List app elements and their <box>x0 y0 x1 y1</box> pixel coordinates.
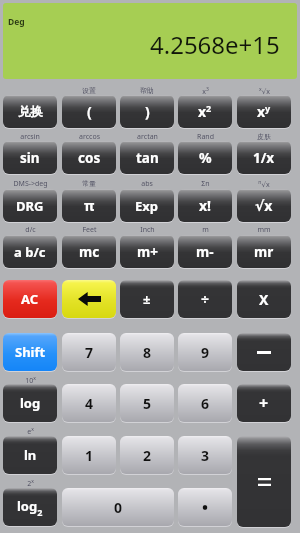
staticText: 10x <box>25 375 36 385</box>
staticText: 0 <box>114 498 123 517</box>
staticText: abs <box>141 179 153 189</box>
staticText: DMS->deg <box>13 179 48 189</box>
button[interactable]: 4 <box>62 384 116 422</box>
button[interactable]: mr <box>237 235 291 268</box>
button[interactable]: 0 <box>62 488 174 526</box>
button[interactable]: xy <box>237 95 291 128</box>
button[interactable]: 1 <box>62 436 116 474</box>
staticText: x! <box>199 196 212 215</box>
staticText: Σn <box>201 179 210 189</box>
button[interactable]: ÷ <box>178 280 232 318</box>
staticText: mm <box>257 225 271 235</box>
button[interactable]: x! <box>178 189 232 222</box>
staticText: ( <box>87 102 92 121</box>
staticText: 5 <box>143 394 152 413</box>
staticText: ex <box>27 426 34 436</box>
button[interactable]: π <box>62 189 116 222</box>
staticText: 1 <box>85 446 94 465</box>
button[interactable]: 1/x <box>237 141 291 174</box>
button[interactable]: 6 <box>178 384 232 422</box>
button[interactable]: ( <box>62 95 116 128</box>
staticText: DRG <box>16 197 44 215</box>
staticText: 帮助 <box>140 86 154 95</box>
staticText: Deg <box>8 16 25 28</box>
button[interactable]: √x <box>237 189 291 222</box>
button[interactable]: sin <box>3 141 57 174</box>
staticText: arctan <box>137 132 158 142</box>
staticText: m+ <box>137 243 158 261</box>
button[interactable]: log <box>3 384 57 422</box>
staticText: ) <box>145 102 150 121</box>
button[interactable]: cos <box>62 141 116 174</box>
staticText: x2 <box>198 102 212 121</box>
staticText: 9 <box>201 343 210 362</box>
staticText: sin <box>20 149 40 167</box>
button[interactable]: tan <box>120 141 174 174</box>
staticText: ÷ <box>201 290 210 309</box>
button[interactable]: DRG <box>3 189 57 222</box>
staticText: cos <box>78 149 101 167</box>
staticText: 6 <box>201 394 210 413</box>
staticText: m <box>202 225 209 235</box>
staticText: % <box>199 148 212 167</box>
button[interactable]: 9 <box>178 333 232 371</box>
staticText: 4 <box>85 394 94 413</box>
staticText: log <box>20 394 41 412</box>
button[interactable] <box>237 436 291 527</box>
staticText: Shift <box>15 343 46 361</box>
staticText: AC <box>21 290 39 308</box>
button[interactable]: mc <box>62 235 116 268</box>
button[interactable]: m+ <box>120 235 174 268</box>
staticText: arcsin <box>20 132 40 142</box>
staticText: Inch <box>140 225 155 235</box>
button[interactable]: Exp <box>120 189 174 222</box>
button[interactable]: x2 <box>178 95 232 128</box>
staticText: Feet <box>82 225 97 235</box>
staticText: x3 <box>202 86 209 96</box>
staticText: xy <box>257 102 271 121</box>
staticText: √x <box>255 196 273 215</box>
button[interactable]: % <box>178 141 232 174</box>
staticText: 2x <box>27 478 34 488</box>
staticText: 1/x <box>253 149 275 167</box>
staticText: 设置 <box>82 86 96 95</box>
button[interactable]: ln <box>3 436 57 474</box>
staticText: π <box>84 196 95 215</box>
button[interactable]: 2 <box>120 436 174 474</box>
staticText: X <box>259 290 269 309</box>
staticText: m- <box>196 243 214 261</box>
button[interactable]: AC <box>3 280 57 318</box>
button[interactable]: 7 <box>62 333 116 371</box>
button[interactable]: log2 <box>3 488 57 526</box>
staticText: 2 <box>143 446 152 465</box>
staticText: ± <box>143 290 151 308</box>
button[interactable]: ± <box>120 280 174 318</box>
staticText: tan <box>136 149 159 167</box>
staticText: 3 <box>201 446 210 465</box>
button[interactable]: 兑换 <box>3 95 57 128</box>
staticText: 皮肤 <box>257 132 271 141</box>
button[interactable]: 3 <box>178 436 232 474</box>
button[interactable]: 5 <box>120 384 174 422</box>
staticText: n√x <box>258 179 270 189</box>
button[interactable]: Shift <box>3 333 57 371</box>
staticText: Exp <box>135 197 159 215</box>
button[interactable]: X <box>237 280 291 318</box>
staticText: mc <box>79 243 100 261</box>
button[interactable] <box>237 333 291 371</box>
button[interactable]: 8 <box>120 333 174 371</box>
button[interactable]: a b/c <box>3 235 57 268</box>
staticText: mr <box>254 243 274 261</box>
staticText: Rand <box>197 132 214 142</box>
staticText: 7 <box>85 343 94 362</box>
button[interactable]: + <box>237 384 291 422</box>
staticText: + <box>259 392 269 414</box>
button[interactable]: ) <box>120 95 174 128</box>
staticText: x√x <box>259 86 270 96</box>
button[interactable]: • <box>178 488 232 526</box>
button[interactable]: m- <box>178 235 232 268</box>
staticText: a b/c <box>14 243 46 261</box>
button[interactable]: Backspace <box>62 280 116 318</box>
staticText: • <box>202 496 209 518</box>
staticText: arccos <box>79 132 100 142</box>
